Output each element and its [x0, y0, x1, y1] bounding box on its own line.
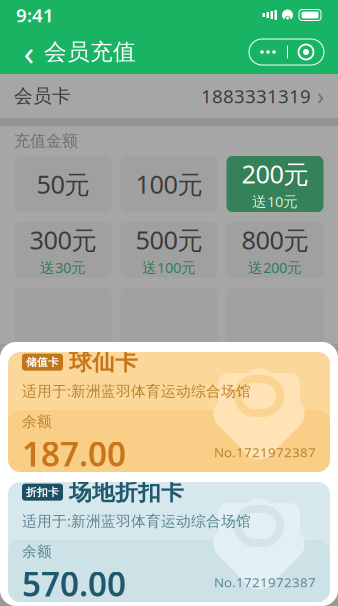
- staticText: ›: [311, 81, 324, 111]
- staticText: 余额: [22, 412, 52, 430]
- button[interactable]: 100元: [120, 156, 217, 212]
- staticText: 适用于:新洲蓝羽体育运动综合场馆: [22, 511, 251, 530]
- staticText: No.1721972387: [214, 573, 316, 591]
- button[interactable]: 800元: [226, 222, 323, 278]
- staticText: 1883331319: [201, 84, 311, 108]
- button[interactable]: 储值卡: [8, 352, 330, 472]
- button[interactable]: 返回: [14, 35, 44, 69]
- staticText: 570.00: [22, 561, 126, 606]
- staticText: 送30元: [40, 258, 86, 277]
- staticText: 场地折扣卡: [69, 478, 184, 506]
- button[interactable]: 200元: [226, 156, 323, 212]
- staticText: 储值卡: [26, 356, 59, 369]
- button[interactable]: 500元: [120, 222, 217, 278]
- staticText: 9:41: [16, 3, 54, 27]
- staticText: 800元: [241, 223, 308, 256]
- button[interactable]: 更多: [249, 39, 287, 65]
- staticText: 余额: [22, 542, 52, 560]
- staticText: 折扣卡: [26, 486, 59, 499]
- staticText: 200元: [241, 157, 308, 190]
- staticText: 送10元: [252, 192, 298, 211]
- button[interactable]: 首页: [288, 39, 324, 65]
- button[interactable]: 300元: [14, 222, 111, 278]
- staticText: 会员充值: [44, 38, 136, 66]
- staticText: 100元: [135, 167, 202, 201]
- staticText: 球仙卡: [69, 348, 138, 376]
- staticText: 送100元: [142, 258, 196, 277]
- staticText: 300元: [29, 223, 96, 256]
- staticText: 会员卡: [14, 84, 71, 107]
- staticText: 适用于:新洲蓝羽体育运动综合场馆: [22, 381, 251, 400]
- staticText: 187.00: [22, 431, 126, 476]
- staticText: No.1721972387: [214, 443, 316, 461]
- staticText: 500元: [135, 223, 202, 256]
- button[interactable]: [120, 288, 217, 344]
- button[interactable]: [14, 288, 111, 344]
- staticText: ‹: [23, 29, 34, 75]
- staticText: 50元: [36, 167, 89, 201]
- button[interactable]: 50元: [14, 156, 111, 212]
- button[interactable]: 折扣卡: [8, 482, 330, 602]
- staticText: 充值金额: [14, 131, 78, 151]
- staticText: 送200元: [248, 258, 302, 277]
- button[interactable]: [226, 288, 323, 344]
